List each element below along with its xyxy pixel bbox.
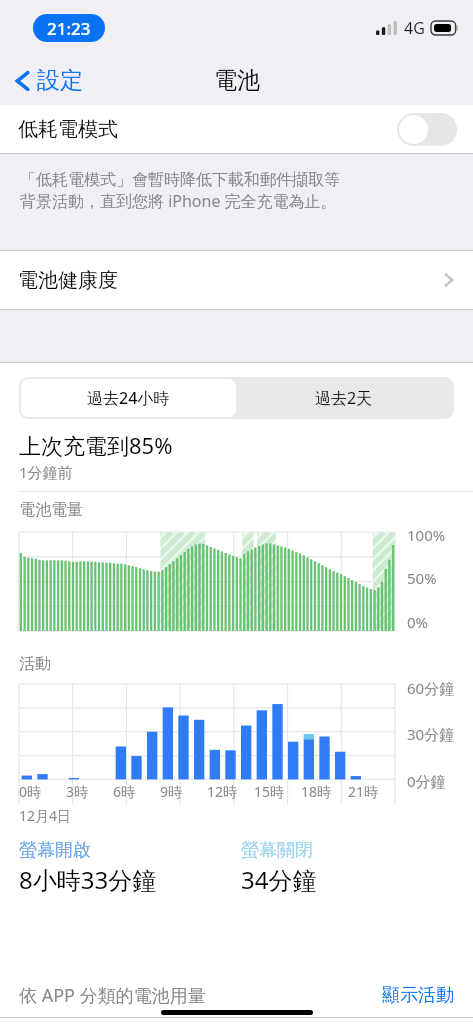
staticText: 依 APP 分類的電池用量: [19, 983, 206, 1008]
button[interactable]: 電池健康度: [0, 251, 473, 309]
staticText: 上次充電到85%: [19, 430, 173, 460]
staticText: 12月4日: [19, 806, 72, 825]
staticText: 1分鐘前: [19, 462, 73, 482]
staticText: 「低耗電模式」會暫時降低下載和郵件擷取等: [20, 170, 340, 190]
staticText: 活動: [19, 654, 51, 674]
staticText: 100%: [407, 525, 446, 545]
button[interactable]: 過去24小時: [21, 379, 236, 417]
staticText: 0時: [19, 782, 42, 801]
button[interactable]: 顯示活動: [382, 984, 454, 1007]
staticText: 0%: [407, 612, 429, 632]
staticText: 6時: [113, 782, 136, 801]
staticText: 3時: [66, 782, 89, 801]
staticText: 電池電量: [19, 500, 83, 520]
staticText: 50%: [407, 568, 437, 588]
button[interactable]: 設定: [12, 66, 83, 95]
staticText: 21:23: [47, 17, 91, 40]
staticText: 電池: [214, 66, 260, 95]
staticText: 顯示活動: [382, 984, 454, 1007]
staticText: 0分鐘: [407, 771, 446, 791]
staticText: 螢幕開啟: [19, 839, 91, 862]
staticText: 9時: [160, 782, 183, 801]
staticText: 過去2天: [315, 387, 373, 409]
staticText: 8小時33分鐘: [19, 863, 157, 896]
staticText: 60分鐘: [407, 678, 455, 698]
staticText: 18時: [301, 782, 332, 801]
staticText: 34分鐘: [241, 863, 317, 896]
staticText: 15時: [254, 782, 285, 801]
staticText: 4G: [404, 17, 425, 39]
staticText: 30分鐘: [407, 724, 455, 744]
button[interactable]: 低耗電模式: [0, 105, 473, 153]
staticText: 過去24小時: [87, 387, 170, 409]
staticText: 設定: [37, 66, 83, 95]
staticText: 背景活動，直到您將 iPhone 完全充電為止。: [20, 190, 337, 212]
staticText: 12時: [207, 782, 238, 801]
staticText: 21時: [348, 782, 379, 801]
staticText: 電池健康度: [18, 268, 118, 293]
button[interactable]: 低耗電模式開關: [397, 113, 457, 146]
staticText: 低耗電模式: [18, 117, 118, 142]
staticText: 螢幕關閉: [241, 839, 313, 862]
button[interactable]: 過去2天: [236, 379, 452, 417]
